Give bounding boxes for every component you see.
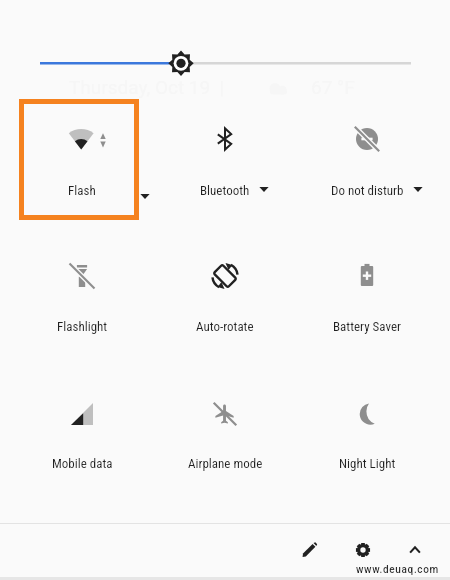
button[interactable]: Collapse: [395, 530, 435, 570]
staticText: Flash: [68, 183, 96, 198]
button[interactable]: Auto-rotate: [154, 244, 296, 344]
staticText: Airplane mode: [188, 456, 263, 471]
button[interactable]: Night Light: [296, 382, 438, 482]
button[interactable]: Flashlight: [11, 244, 153, 344]
button[interactable]: Edit: [290, 530, 330, 570]
button[interactable]: Do not disturb: [296, 107, 438, 207]
staticText: www.deuaq.com: [356, 564, 439, 576]
staticText: Mobile data: [52, 456, 113, 471]
button[interactable]: Flash: [11, 107, 153, 207]
button[interactable]: Airplane mode: [154, 382, 296, 482]
staticText: Night Light: [339, 456, 396, 471]
staticText: Battery Saver: [333, 319, 401, 334]
button[interactable]: Mobile data: [11, 382, 153, 482]
button[interactable]: Battery Saver: [296, 244, 438, 344]
staticText: Flashlight: [57, 319, 108, 334]
button[interactable]: Settings: [343, 530, 383, 570]
button[interactable]: Brightness: [30, 48, 420, 78]
staticText: Do not disturb: [331, 183, 404, 198]
staticText: Bluetooth: [200, 183, 250, 198]
staticText: Auto-rotate: [196, 319, 254, 334]
button[interactable]: Bluetooth: [154, 107, 296, 207]
